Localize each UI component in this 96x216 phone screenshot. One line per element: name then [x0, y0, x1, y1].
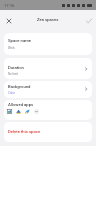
button[interactable]: Close	[3, 15, 14, 26]
button[interactable]: Background	[4, 81, 92, 98]
staticText: Duration	[8, 65, 24, 70]
staticText: Work	[8, 46, 15, 49]
button[interactable]: Duration	[4, 58, 92, 79]
button[interactable]: Delete this space	[4, 122, 92, 142]
staticText: Allowed apps	[8, 102, 34, 107]
button[interactable]: Delete this space	[4, 122, 92, 142]
staticText: 17:16	[4, 3, 15, 8]
staticText: Delete this space	[8, 129, 41, 134]
button[interactable]: Done	[83, 15, 94, 26]
button[interactable]: Allowed apps	[4, 100, 92, 120]
staticText: Space name	[8, 38, 32, 43]
staticText: Background	[8, 84, 31, 89]
button[interactable]: Space name	[4, 33, 92, 55]
staticText: Color	[8, 91, 15, 94]
staticText: Zen spaces	[37, 17, 59, 22]
staticText: No limit	[8, 72, 19, 75]
